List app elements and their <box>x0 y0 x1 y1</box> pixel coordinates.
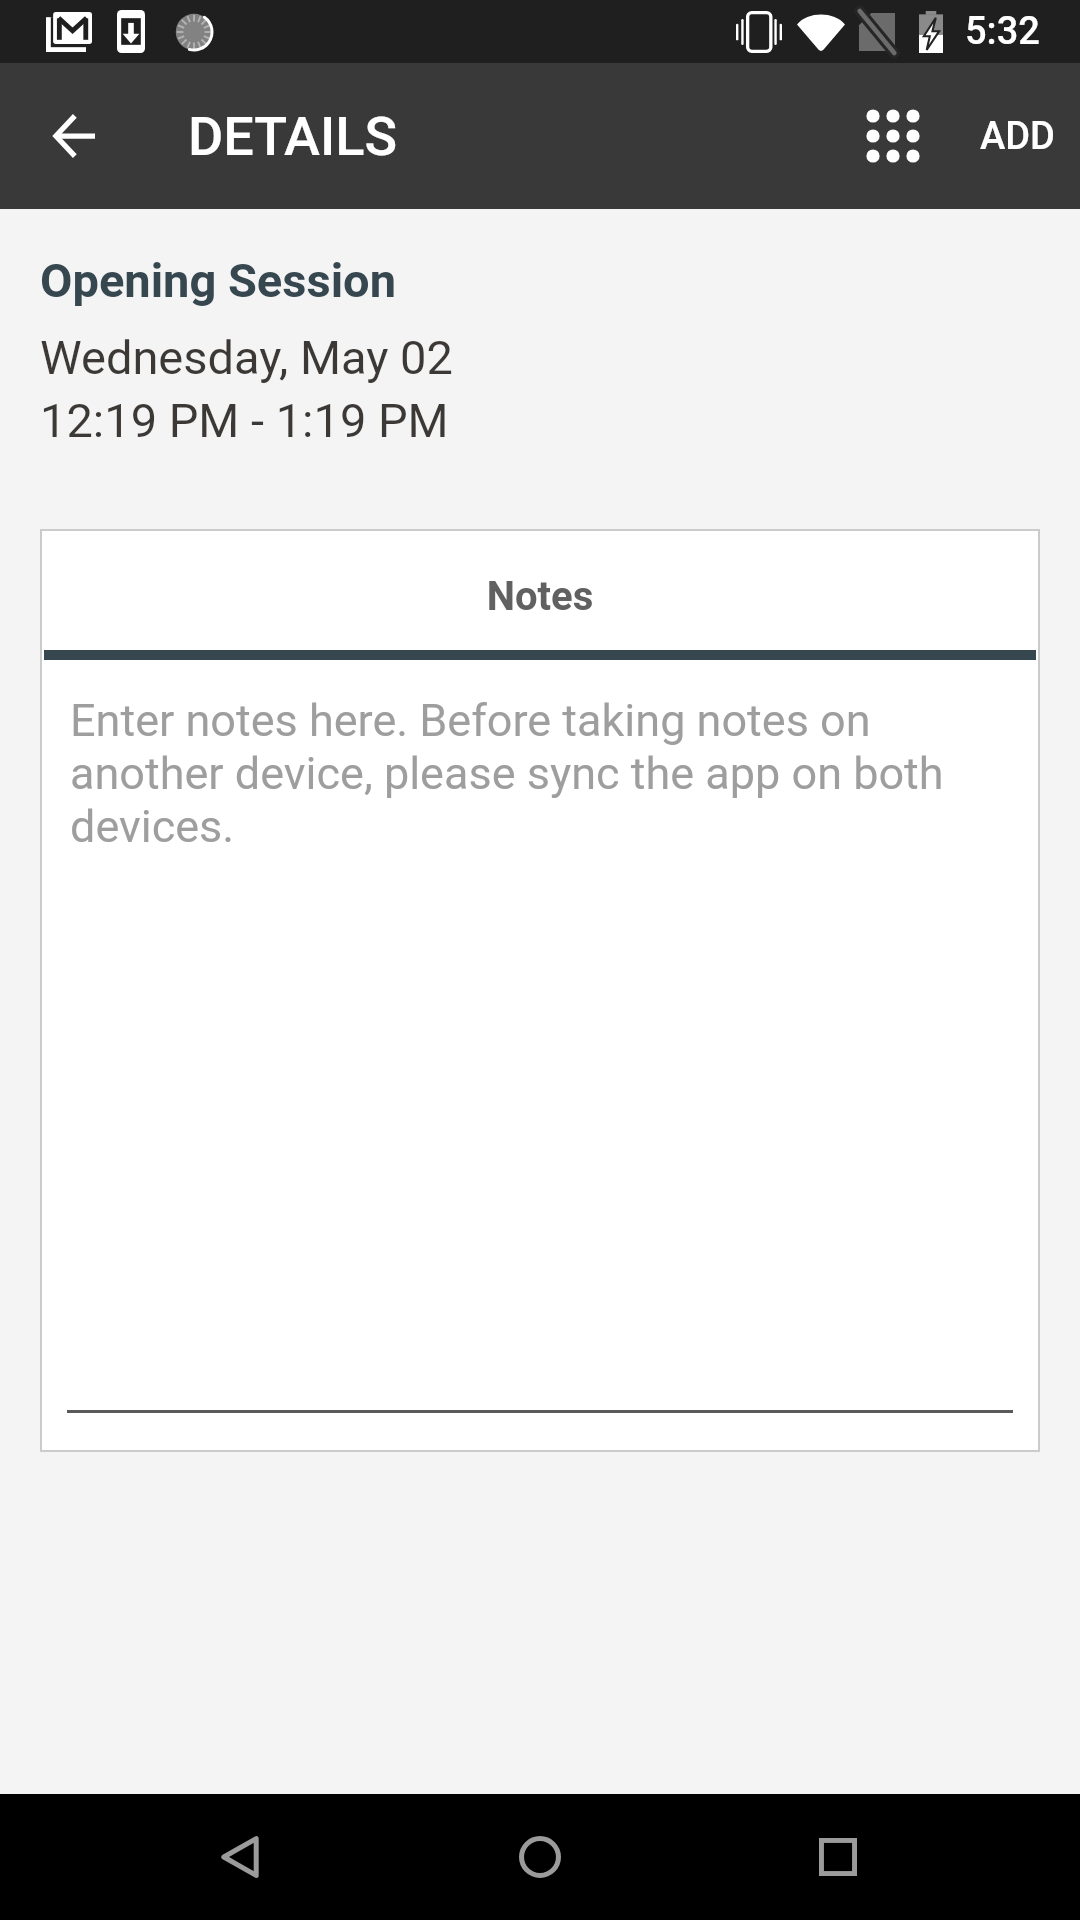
button[interactable]: Recent apps <box>768 1794 908 1920</box>
button[interactable]: Back <box>171 1794 311 1920</box>
staticText: Notes <box>42 573 1038 620</box>
button[interactable]: Navigate up <box>28 90 120 182</box>
button[interactable]: ADD <box>956 78 1080 195</box>
staticText: Enter notes here. Before taking notes on… <box>70 694 1014 853</box>
button[interactable]: Home <box>470 1794 610 1920</box>
staticText: DETAILS <box>188 105 398 168</box>
button[interactable]: Notes <box>42 531 1038 1450</box>
staticText: 5:32 <box>965 9 1040 54</box>
button[interactable]: Apps <box>847 90 939 182</box>
staticText: Wednesday, May 02 12:19 PM - 1:19 PM <box>40 330 453 448</box>
staticText: Opening Session <box>40 253 397 308</box>
staticText: ADD <box>980 114 1055 159</box>
